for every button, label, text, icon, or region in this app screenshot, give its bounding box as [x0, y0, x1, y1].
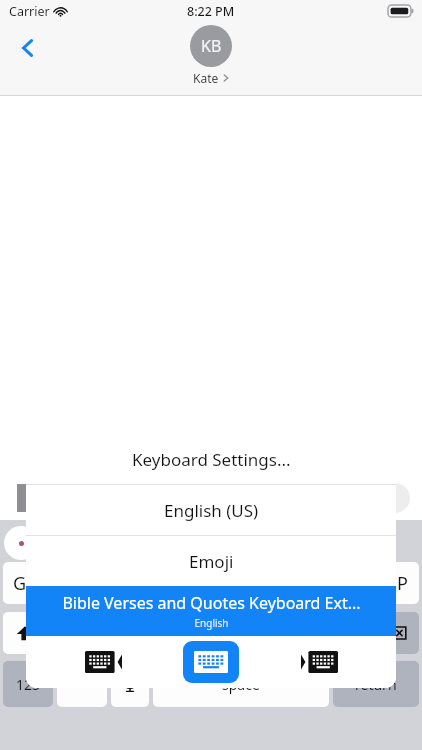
staticText: Carrier [9, 3, 50, 20]
staticText: return [355, 675, 397, 694]
button[interactable]: Suggestion [4, 526, 38, 560]
staticText: English (US) [164, 499, 259, 522]
button[interactable]: Next keyboard [295, 645, 341, 679]
button[interactable]: KB [190, 25, 232, 86]
staticText: space [222, 675, 260, 694]
staticText: Kate [193, 70, 219, 86]
button[interactable]: space [153, 661, 329, 707]
button[interactable]: Dictate [111, 661, 149, 707]
button[interactable]: English (US) [26, 485, 396, 535]
staticText: G [13, 571, 27, 596]
staticText: Bible Verses and Quotes Keyboard Ext... [62, 592, 361, 614]
button[interactable]: Shift [3, 612, 47, 654]
button[interactable]: Next keyboard [57, 661, 107, 707]
staticText: 123 [16, 675, 41, 694]
button[interactable]: Bible Verses and Quotes Keyboard Ext... [26, 586, 396, 636]
button[interactable]: Keyboard Settings... [26, 434, 396, 484]
button[interactable]: return [333, 661, 419, 707]
button[interactable]: 123 [3, 661, 53, 707]
staticText: Keyboard Settings... [132, 448, 291, 471]
button[interactable]: Back [6, 26, 50, 70]
button[interactable]: P [385, 562, 419, 604]
staticText: KB [201, 35, 222, 57]
staticText: Emoji [189, 550, 234, 573]
button[interactable]: G [3, 562, 37, 604]
button[interactable]: Current keyboard [183, 641, 239, 683]
button[interactable]: Backspace [375, 612, 419, 654]
staticText: English [194, 616, 229, 630]
button[interactable]: Emoji [26, 536, 396, 586]
button[interactable]: More [380, 483, 410, 513]
staticText: 8:22 PM [187, 3, 235, 20]
staticText: P [397, 571, 408, 596]
button[interactable]: Toolbar item [17, 484, 30, 512]
button[interactable]: Previous keyboard [82, 645, 128, 679]
